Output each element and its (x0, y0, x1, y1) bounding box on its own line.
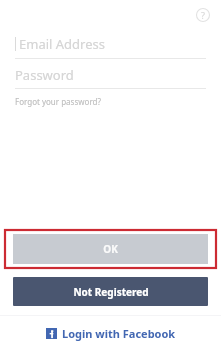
staticText: OK (103, 242, 118, 256)
button[interactable]: OK (13, 234, 208, 264)
staticText: Not Registered (73, 285, 149, 299)
staticText: Password (15, 66, 74, 84)
button[interactable]: Login with Facebook (40, 322, 182, 345)
button[interactable]: Forgot your password? (15, 95, 101, 108)
staticText: Forgot your password? (15, 96, 101, 107)
staticText: Login with Facebook (62, 326, 176, 341)
button[interactable]: Not Registered (13, 277, 208, 306)
button[interactable]: Help (193, 5, 213, 25)
button[interactable]: Password (15, 61, 206, 88)
button[interactable]: Email Address (15, 30, 206, 58)
staticText: Email Address (19, 35, 105, 53)
staticText: ? (201, 9, 205, 21)
